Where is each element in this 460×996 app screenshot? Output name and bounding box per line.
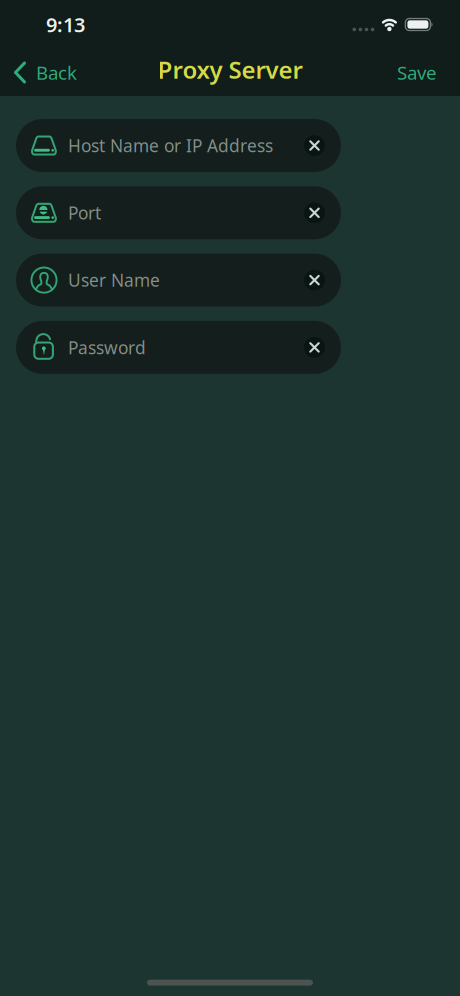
button[interactable]: User Name xyxy=(16,254,341,307)
button[interactable]: Clear text xyxy=(304,135,325,156)
button[interactable]: Save xyxy=(397,60,460,85)
staticText: Proxy Server xyxy=(157,54,302,85)
staticText: Port xyxy=(68,201,101,224)
button[interactable]: Clear text xyxy=(304,337,325,358)
button[interactable]: Password xyxy=(16,321,341,374)
button[interactable]: Clear text xyxy=(304,202,325,223)
button[interactable]: Port xyxy=(16,186,341,239)
staticText: Host Name or IP Address xyxy=(68,134,273,157)
staticText: User Name xyxy=(68,269,160,292)
staticText: Back xyxy=(36,60,77,85)
button[interactable]: Host Name or IP Address xyxy=(16,119,341,172)
button[interactable]: Clear text xyxy=(304,270,325,291)
staticText: Password xyxy=(68,336,146,359)
staticText: 9:13 xyxy=(46,11,85,38)
staticText: Save xyxy=(397,60,437,85)
button[interactable]: Back xyxy=(0,60,77,85)
